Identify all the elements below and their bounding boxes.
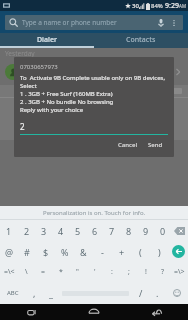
button[interactable]: Backspace: [171, 220, 188, 241]
button[interactable]: 5: [62, 119, 125, 140]
staticText: ABC: [7, 289, 19, 297]
button[interactable]: .: [149, 282, 166, 304]
button[interactable]: 4: [0, 119, 62, 140]
button[interactable]: 8: [120, 220, 137, 241]
button[interactable]: Emoji: [166, 282, 188, 304]
staticText: 0: [160, 225, 166, 237]
button[interactable]: ?: [154, 262, 171, 282]
button[interactable]: =\>: [171, 262, 188, 282]
button[interactable]: #: [18, 241, 36, 262]
button[interactable]: ": [69, 262, 86, 282]
staticText: +: [119, 246, 125, 258]
button[interactable]: 5: [69, 220, 86, 241]
button[interactable]: *: [52, 262, 69, 282]
button[interactable]: -: [93, 241, 112, 262]
button[interactable]: 1: [0, 220, 18, 241]
staticText: 5: [90, 119, 98, 137]
button[interactable]: 2: [18, 220, 35, 241]
button[interactable]: 0: [154, 220, 171, 241]
staticText: 2: [20, 121, 25, 132]
staticText: :: [111, 267, 113, 277]
staticText: 6: [153, 119, 161, 137]
button[interactable]: 3: [35, 220, 52, 241]
staticText: _: [49, 287, 53, 299]
button[interactable]: 9: [137, 220, 154, 241]
staticText: 2: [24, 225, 30, 237]
button[interactable]: 6: [86, 220, 103, 241]
button[interactable]: 2: [20, 121, 168, 135]
button[interactable]: Personalization is on. Touch for info.: [0, 206, 188, 219]
button[interactable]: ;: [120, 262, 137, 282]
staticText: /: [139, 287, 143, 299]
staticText: 9:29: [165, 1, 179, 11]
button[interactable]: 7: [103, 220, 120, 241]
staticText: 07030657973: [27, 67, 72, 77]
button[interactable]: $: [36, 241, 55, 262]
button[interactable]: Send: [143, 139, 168, 151]
staticText: Send: [148, 141, 163, 149]
button[interactable]: ,: [26, 282, 42, 304]
button[interactable]: +: [112, 241, 131, 262]
button[interactable]: Cancel: [113, 139, 143, 151]
button[interactable]: Type a name or phone number: [5, 15, 183, 30]
button[interactable]: 4: [52, 220, 69, 241]
staticText: =\<: [4, 267, 15, 277]
staticText: $: [43, 246, 49, 258]
staticText: ;: [128, 267, 130, 277]
button[interactable]: Voice search: [155, 17, 166, 28]
staticText: 1: [27, 98, 35, 116]
button[interactable]: _: [42, 282, 59, 304]
staticText: !: [145, 267, 147, 277]
button[interactable]: =\<: [0, 262, 18, 282]
staticText: 8: [126, 225, 132, 237]
button[interactable]: ): [150, 241, 169, 262]
button[interactable]: 6: [125, 119, 188, 140]
staticText: To Activate 9B Complete usable only on 9…: [20, 74, 168, 114]
button[interactable]: Contacts: [94, 33, 188, 48]
button[interactable]: :: [103, 262, 120, 282]
staticText: ": [76, 267, 79, 277]
button[interactable]: /: [132, 282, 149, 304]
staticText: &: [80, 246, 87, 258]
button[interactable]: \: [18, 262, 35, 282]
button[interactable]: !: [137, 262, 154, 282]
staticText: Cancel: [118, 141, 138, 149]
button[interactable]: 2: [62, 98, 125, 119]
staticText: 9: [143, 225, 149, 237]
button[interactable]: 3: [125, 98, 188, 119]
button[interactable]: @: [0, 241, 18, 262]
button[interactable]: (: [131, 241, 150, 262]
button[interactable]: Home: [62, 304, 125, 320]
button[interactable]: &: [74, 241, 93, 262]
staticText: 4: [27, 119, 35, 137]
button[interactable]: ABC: [0, 282, 26, 304]
staticText: 84%: [151, 2, 163, 10]
staticText: Type a name or phone number: [22, 18, 117, 27]
button[interactable]: 07030657973: [5, 59, 183, 85]
button[interactable]: =: [35, 262, 52, 282]
staticText: ?: [161, 267, 165, 277]
staticText: *: [59, 267, 63, 277]
staticText: =\>: [174, 267, 185, 277]
staticText: 4: [58, 225, 64, 237]
button[interactable]: Recents: [0, 304, 62, 320]
button[interactable]: Dialer: [0, 33, 94, 48]
button[interactable]: 1: [0, 98, 62, 119]
button[interactable]: %: [55, 241, 74, 262]
staticText: -: [101, 246, 104, 258]
button[interactable]: More options: [168, 17, 179, 28]
staticText: ): [158, 246, 161, 258]
button[interactable]: ': [86, 262, 103, 282]
button[interactable]: Enter: [169, 241, 188, 262]
staticText: #: [24, 246, 30, 258]
staticText: 5: [75, 225, 81, 237]
button[interactable]: Back: [125, 304, 188, 320]
staticText: Dialer: [37, 35, 57, 45]
button[interactable]: Space: [59, 282, 132, 304]
staticText: =: [41, 267, 46, 277]
